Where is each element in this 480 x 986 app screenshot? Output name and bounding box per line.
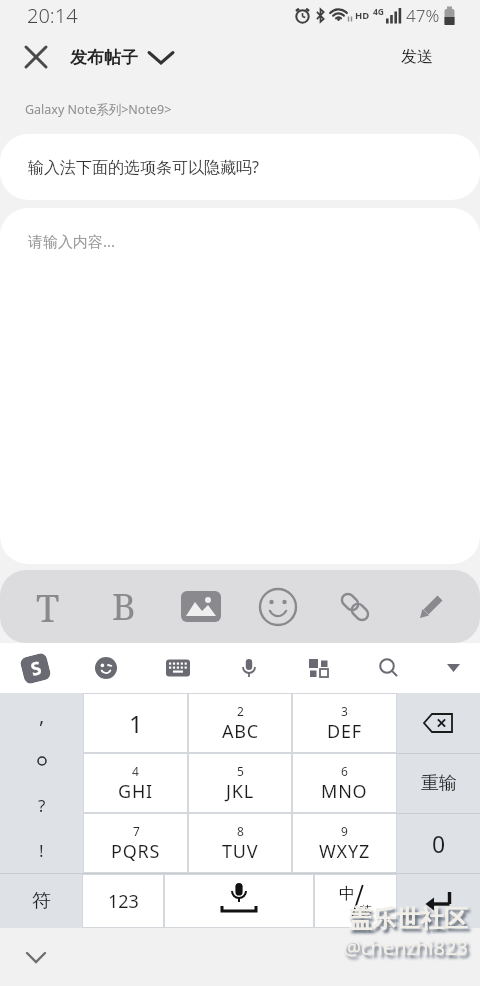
button[interactable] [16,37,56,77]
button[interactable]: , [0,693,83,738]
staticText: PQRS [111,839,161,864]
staticText: DEF [327,719,362,744]
staticText: 发送 [401,47,433,67]
staticText: 发布帖子 [70,47,138,68]
button[interactable]: 123 [82,874,164,928]
staticText: 3 [341,703,348,719]
button[interactable]: 发送 [401,47,433,67]
button[interactable] [438,653,468,683]
button[interactable] [239,570,316,643]
button[interactable] [393,570,470,643]
staticText: 英 [360,903,372,918]
button[interactable] [299,648,339,688]
staticText: 4G [373,6,385,18]
staticText: 7 [133,823,140,839]
staticText: 输入法下面的选项条可以隐藏吗? [28,156,259,178]
staticText: 2 [237,703,244,719]
button[interactable]: S [19,652,52,685]
staticText: GHI [118,779,153,804]
button[interactable] [397,874,480,928]
button[interactable]: T [10,570,86,643]
button[interactable] [86,648,126,688]
staticText: 盖乐世社区 [348,904,468,934]
staticText: 6 [341,763,348,779]
staticText: @chenzhi823 [343,934,468,961]
staticText: 5 [237,763,244,779]
staticText: HD [355,9,370,22]
staticText: 重输 [421,772,457,795]
button[interactable]: ? [0,783,83,828]
button[interactable]: 9 [292,813,397,873]
staticText: B [112,582,136,631]
staticText: 4 [132,763,139,779]
button[interactable] [16,937,56,977]
staticText: 1 [129,707,143,740]
staticText: Galaxy Note系列>Note9> [25,101,172,118]
button[interactable]: B [86,570,162,643]
staticText: 47% [406,4,440,27]
button[interactable] [316,570,393,643]
staticText: 中 [339,884,355,904]
staticText: S [28,655,44,682]
button[interactable]: 2 [188,693,292,753]
staticText: T [36,581,60,633]
staticText: 123 [108,889,139,914]
button[interactable] [229,648,269,688]
staticText: TUV [222,839,259,864]
button[interactable]: 3 [292,693,397,753]
staticText: 符 [32,889,51,913]
button[interactable] [162,570,239,643]
button[interactable]: 重输 [397,754,480,813]
button[interactable]: 符 [0,874,82,928]
staticText: 9 [341,823,348,839]
button[interactable] [369,648,409,688]
button[interactable] [0,738,83,783]
button[interactable]: 4 [83,753,188,813]
staticText: WXYZ [319,839,370,864]
button[interactable]: 6 [292,753,397,813]
staticText: MNO [321,779,368,804]
staticText: JKL [226,779,254,804]
button[interactable]: 1 [83,693,188,753]
staticText: ABC [222,719,259,744]
button[interactable] [164,874,314,928]
button[interactable]: 输入法下面的选项条可以隐藏吗? [0,134,480,200]
staticText: 8 [237,823,244,839]
staticText: 请输入内容... [28,231,116,251]
staticText: 0 [432,828,446,859]
button[interactable]: 5 [188,753,292,813]
button[interactable]: 发布帖子 [70,47,174,68]
button[interactable]: 0 [397,814,480,873]
button[interactable]: 中 [314,874,397,928]
staticText: , [39,702,45,729]
button[interactable] [158,648,198,688]
button[interactable]: ! [0,828,83,873]
staticText: ? [38,794,46,817]
staticText: 20:14 [27,2,78,29]
button[interactable]: 请输入内容... [0,208,480,564]
button[interactable]: 7 [83,813,188,873]
staticText: ! [39,839,44,862]
button[interactable]: 8 [188,813,292,873]
button[interactable] [397,693,480,753]
